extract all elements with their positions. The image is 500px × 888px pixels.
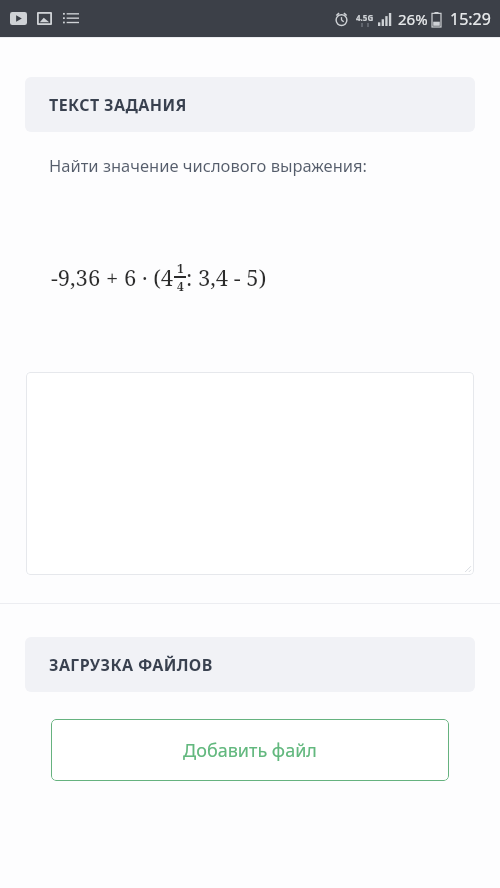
staticText: Добавить файл [183, 738, 317, 763]
staticText: 4 [177, 278, 184, 294]
staticText: -9,36 + 6 · (4 [51, 262, 174, 292]
button[interactable]: ЗАГРУЗКА ФАЙЛОВ [25, 637, 475, 692]
staticText: 26% [398, 9, 428, 29]
staticText: : 3,4 - 5) [186, 262, 267, 292]
staticText: ЗАГРУЗКА ФАЙЛОВ [49, 654, 213, 676]
button[interactable]: Добавить файл [51, 719, 449, 781]
staticText: 15:29 [450, 8, 491, 30]
staticText: ТЕКСТ ЗАДАНИЯ [49, 94, 187, 116]
staticText: 4.5G [356, 12, 374, 23]
staticText: Найти значение числового выражения: [49, 154, 367, 176]
staticText: 1 [177, 260, 184, 276]
button[interactable]: ТЕКСТ ЗАДАНИЯ [25, 77, 475, 132]
